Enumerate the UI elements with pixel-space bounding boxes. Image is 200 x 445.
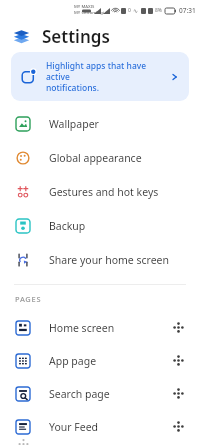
staticText: Backup bbox=[49, 219, 86, 233]
button[interactable]: Gestures and hot keys bbox=[0, 175, 200, 209]
staticText: Share your home screen bbox=[49, 253, 170, 267]
staticText: MY MAXIS bbox=[74, 4, 95, 10]
staticText: 8% bbox=[155, 7, 163, 14]
button[interactable]: Wallpaper bbox=[0, 107, 200, 141]
staticText: Gestures and hot keys bbox=[49, 185, 159, 199]
other: Reorder Home screen bbox=[171, 320, 186, 335]
button[interactable]: App page bbox=[0, 344, 200, 377]
staticText: ∿ bbox=[133, 7, 139, 14]
other: Reorder Search page bbox=[171, 386, 186, 401]
other: Reorder Your Feed bbox=[171, 419, 186, 434]
button[interactable]: Share your home screen bbox=[0, 243, 200, 277]
staticText: 0 bbox=[128, 7, 131, 14]
staticText: PAGES bbox=[15, 294, 42, 304]
staticText: Your Feed bbox=[49, 420, 171, 434]
button[interactable]: Highlight apps that have active notifica… bbox=[11, 52, 189, 101]
staticText: Settings bbox=[42, 25, 110, 48]
staticText: MY CelcomDigi… bbox=[74, 10, 108, 16]
staticText: App page bbox=[49, 354, 171, 368]
staticText: Global appearance bbox=[49, 151, 142, 165]
button[interactable]: Backup bbox=[0, 209, 200, 243]
staticText: 07:31 bbox=[179, 6, 196, 15]
button[interactable]: Your Feed bbox=[0, 410, 200, 443]
button[interactable]: Global appearance bbox=[0, 141, 200, 175]
staticText: Highlight apps that have active notifica… bbox=[46, 60, 163, 93]
staticText: Home screen bbox=[49, 321, 171, 335]
button[interactable]: Search page bbox=[0, 377, 200, 410]
button[interactable]: Page manager bbox=[0, 443, 200, 445]
button[interactable]: Home screen bbox=[0, 311, 200, 344]
other: Reorder App page bbox=[171, 353, 186, 368]
staticText: Search page bbox=[49, 387, 171, 401]
staticText: Wallpaper bbox=[49, 117, 99, 131]
